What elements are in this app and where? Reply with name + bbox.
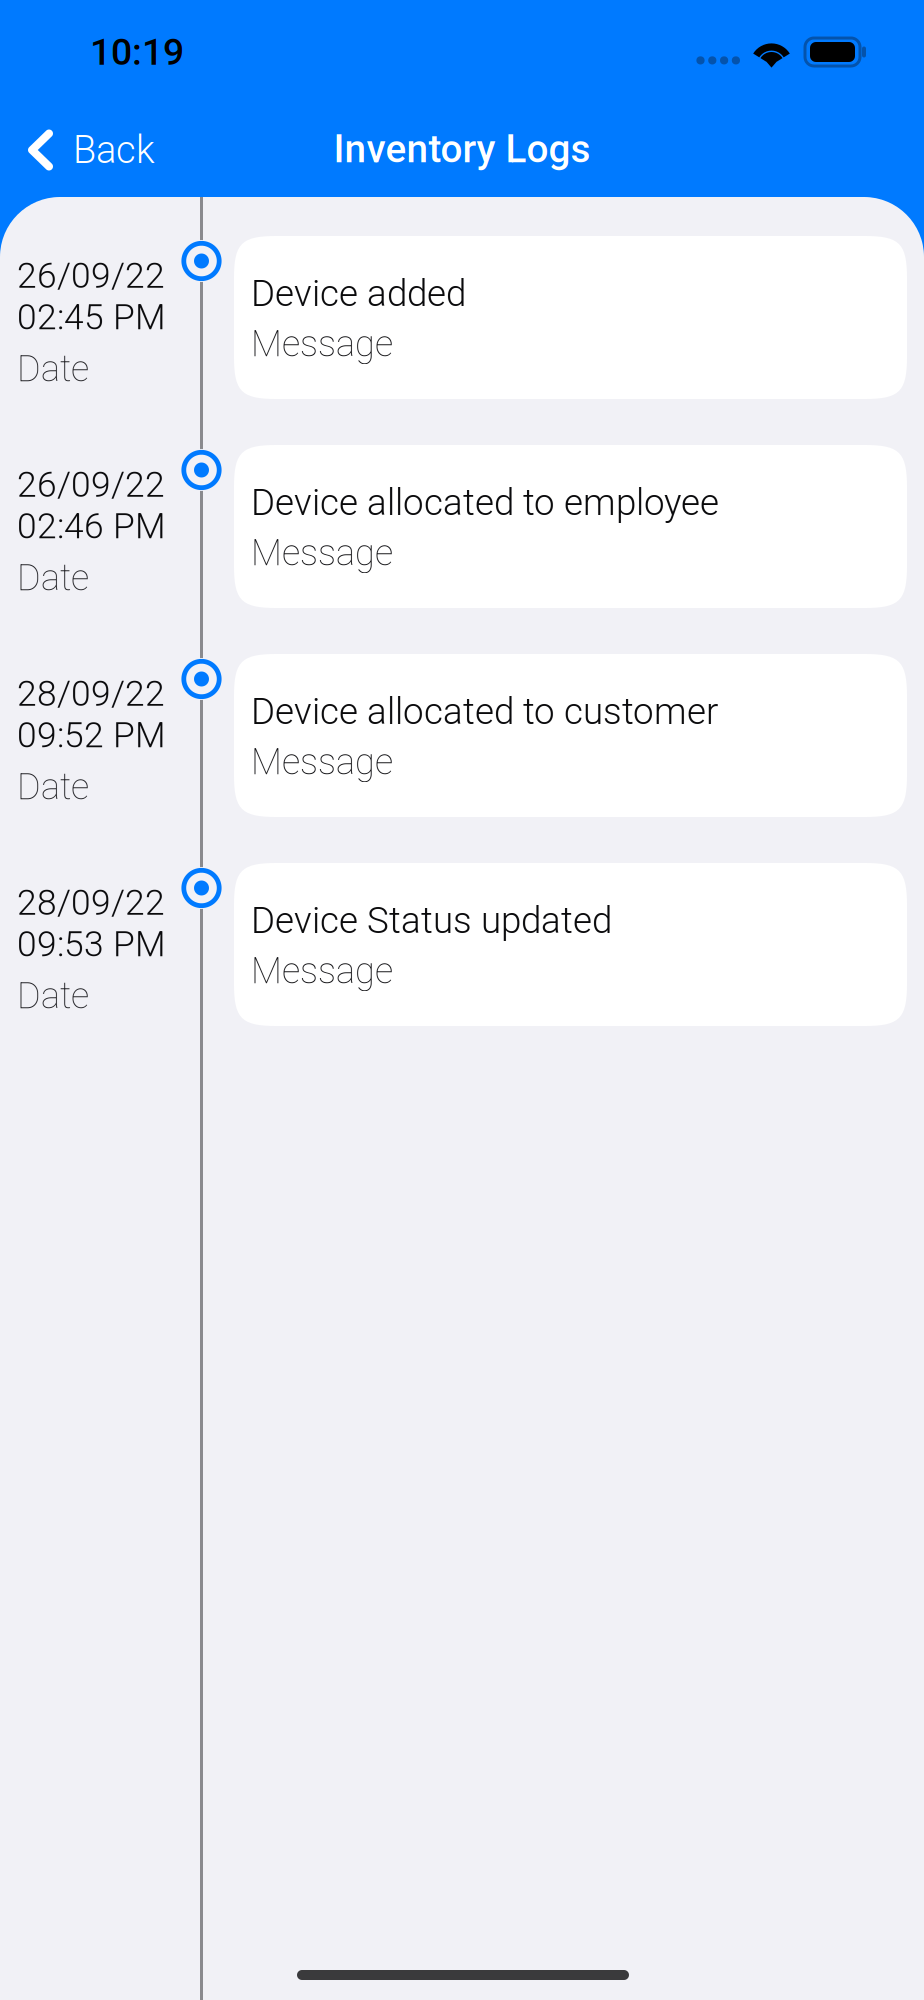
staticText: Device allocated to employee [251,481,719,524]
staticText: 02:45 PM [17,296,166,338]
staticText: Device Status updated [251,899,612,942]
staticText: Date [17,766,89,808]
staticText: Message [251,323,393,365]
staticText: 10:19 [90,30,184,74]
staticText: Device added [251,272,466,315]
staticText: Message [251,950,393,992]
staticText: 28/09/22 [17,673,165,714]
staticText: Message [251,741,393,783]
staticText: 09:53 PM [17,923,166,965]
staticText: Date [17,975,89,1017]
staticText: Date [17,348,89,390]
button[interactable]: Device allocated to customer [234,654,907,817]
staticText: 02:46 PM [17,505,166,547]
staticText: 28/09/22 [17,882,165,923]
button[interactable]: Back [0,113,175,187]
staticText: Message [251,532,393,574]
button[interactable]: Device allocated to employee [234,445,907,608]
staticText: 26/09/22 [17,464,165,505]
staticText: Inventory Logs [333,126,590,172]
staticText: Device allocated to customer [251,690,718,733]
staticText: Back [73,128,155,172]
staticText: 26/09/22 [17,255,165,296]
staticText: Date [17,557,89,599]
button[interactable]: Device added [234,236,907,399]
staticText: 09:52 PM [17,714,166,756]
button[interactable]: Device Status updated [234,863,907,1026]
